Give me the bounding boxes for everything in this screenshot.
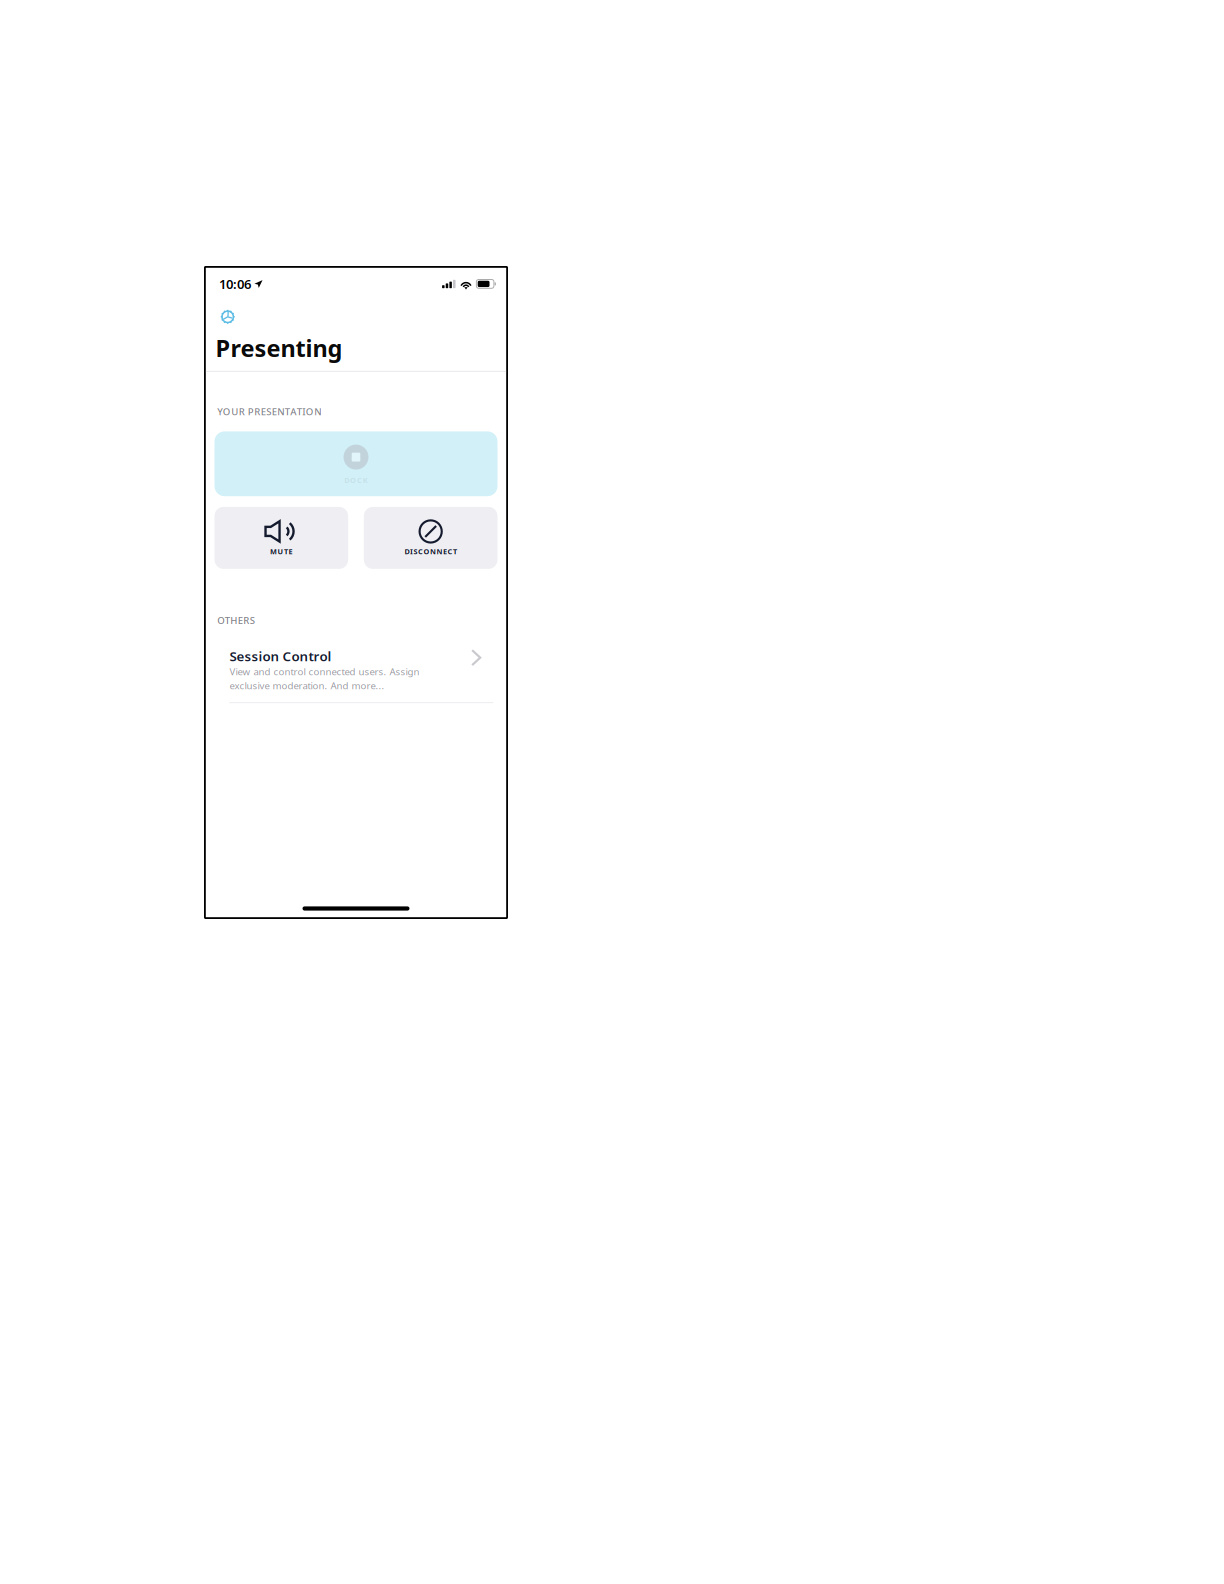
staticText: Session Control — [229, 647, 331, 665]
button[interactable]: Connection info — [216, 305, 240, 329]
staticText: View and control connected users. Assign — [229, 665, 419, 678]
staticText: DOCK — [344, 475, 368, 485]
button[interactable]: Session Control — [229, 647, 493, 705]
staticText: exclusive moderation. And more... — [229, 679, 384, 692]
staticText: YOUR PRESENTATION — [217, 405, 321, 418]
staticText: Presenting — [215, 332, 342, 364]
button[interactable]: DISCONNECT — [364, 507, 498, 569]
staticText: DISCONNECT — [404, 546, 457, 556]
staticText: MUTE — [270, 546, 293, 556]
staticText: OTHERS — [217, 614, 255, 627]
staticText: 10:06 — [219, 275, 251, 293]
button[interactable]: MUTE — [214, 507, 348, 569]
